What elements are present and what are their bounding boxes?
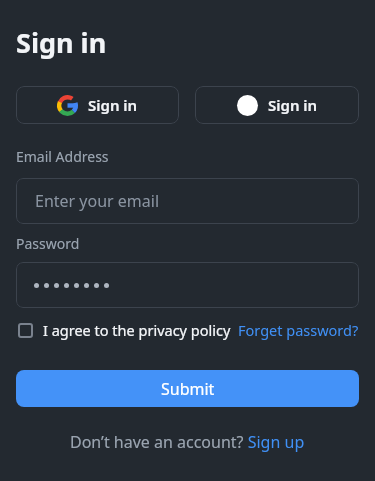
staticText: Sign in [268, 95, 318, 115]
button[interactable]: Sign in [16, 86, 179, 124]
button[interactable]: Submit [16, 370, 359, 407]
staticText: Sign in [16, 24, 107, 61]
button[interactable]: Sign in [195, 86, 359, 124]
button[interactable]: Forget password? [238, 320, 359, 340]
staticText: Enter your email [35, 190, 160, 212]
button[interactable] [16, 262, 359, 308]
button[interactable]: Enter your email [16, 178, 359, 224]
staticText: I agree to the privacy policy [43, 320, 231, 340]
staticText: Password [16, 234, 80, 253]
button[interactable]: I agree to the privacy policy [16, 320, 231, 340]
staticText: Submit [161, 378, 215, 400]
button[interactable]: Don’t have an account? Sign up [70, 431, 305, 453]
staticText: Sign in [88, 95, 138, 115]
staticText: Email Address [16, 147, 109, 166]
